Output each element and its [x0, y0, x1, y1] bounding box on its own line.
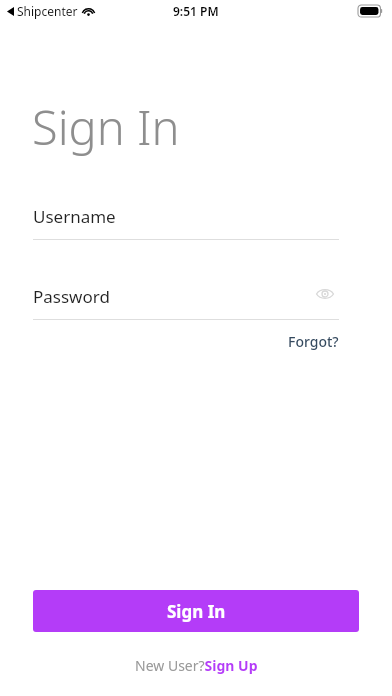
button[interactable]: Forgot?: [272, 328, 339, 354]
staticText: Sign In: [167, 600, 226, 623]
staticText: Shipcenter: [17, 3, 78, 19]
staticText: Password: [33, 285, 110, 308]
button[interactable]: Password: [33, 280, 339, 320]
button[interactable]: New User?Sign Up: [131, 654, 262, 677]
button[interactable]: Username: [33, 200, 339, 240]
button[interactable]: Sign In: [33, 590, 359, 632]
button[interactable]: Show password: [311, 280, 339, 308]
staticText: Sign In: [32, 95, 180, 159]
staticText: New User?Sign Up: [135, 656, 258, 675]
staticText: Username: [33, 205, 116, 228]
staticText: Forgot?: [288, 332, 339, 351]
staticText: 9:51 PM: [173, 3, 219, 19]
button[interactable]: Back to Shipcenter: [7, 3, 95, 19]
